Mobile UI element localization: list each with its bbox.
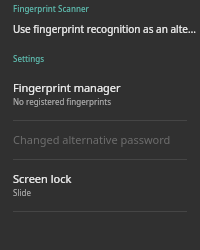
staticText: Use fingerprint recognition as an altern… xyxy=(13,22,196,36)
staticText: Changed alternative password xyxy=(13,132,171,147)
button[interactable]: Screen lock xyxy=(0,163,200,206)
staticText: Fingerprint manager xyxy=(13,80,121,95)
staticText: No registered fingerprints xyxy=(13,96,111,107)
button: Changed alternative password xyxy=(0,124,200,155)
staticText: Screen lock xyxy=(13,171,72,186)
button[interactable]: Fingerprint manager xyxy=(0,72,200,115)
staticText: Settings xyxy=(13,53,45,64)
staticText: Fingerprint Scanner xyxy=(13,3,89,14)
staticText: Slide xyxy=(13,187,31,198)
